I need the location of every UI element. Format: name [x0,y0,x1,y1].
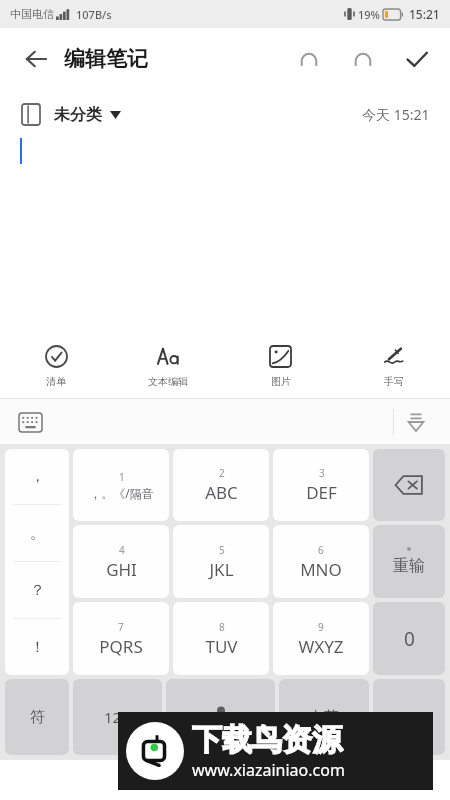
staticText: 符 [30,708,45,727]
button[interactable]: 重做 [340,36,386,82]
button[interactable]: 中英 [279,679,369,755]
button[interactable]: 5 [173,525,269,598]
staticText: 9 [318,620,324,634]
button[interactable]: 键盘设置 [12,404,48,440]
staticText: 7 [118,620,124,634]
staticText: 手写 [384,375,404,388]
button[interactable]: 4 [73,525,169,598]
staticText: 。 [30,524,45,543]
button[interactable] [373,679,445,755]
staticText: 12# [104,707,131,727]
button[interactable]: 收起候选 [394,400,438,444]
staticText: ？ [30,581,45,600]
button[interactable]: 6 [273,525,369,598]
button[interactable]: 符 [5,679,69,755]
staticText: MNO [300,558,342,581]
button[interactable]: 9 [273,602,369,675]
button[interactable]: 2 [173,449,269,521]
button[interactable]: 撤销 [286,36,332,82]
staticText: 中国电信 [10,7,54,21]
staticText: 1 [119,470,125,484]
staticText: GHI [106,558,137,581]
button[interactable]: 返回 [14,37,58,81]
staticText: PQRS [99,635,143,658]
staticText: www.xiazainiao.com [192,759,345,781]
staticText: DEF [306,481,337,504]
button[interactable]: 文本编辑 [112,334,224,398]
staticText: ， [30,467,45,486]
button[interactable]: 图片 [224,334,337,398]
staticText: 8 [219,620,225,634]
staticText: 15:21 [409,6,440,22]
staticText: 19% [358,7,380,22]
button[interactable]: 0 [373,602,445,675]
button[interactable]: 删除 [373,449,445,521]
button[interactable]: 收起键盘 [202,765,248,795]
button[interactable]: 1 [73,449,169,521]
button[interactable]: 12# [73,679,162,755]
button[interactable]: ， [5,449,69,675]
staticText: 107B/s [76,7,112,22]
staticText: 3 [319,466,325,480]
staticText: WXYZ [298,635,344,658]
staticText: 文本编辑 [148,375,188,388]
staticText: 编辑笔记 [64,46,148,72]
staticText: 0 [404,626,415,652]
staticText: 图片 [271,375,291,388]
button[interactable]: 7 [73,602,169,675]
staticText: ，。《/隔音 [89,485,154,501]
staticText: 4 [119,543,125,557]
button[interactable]: 重输 [373,525,445,598]
staticText: 重输 [393,556,425,576]
staticText: ！ [30,638,45,657]
staticText: 未分类 [54,105,102,125]
staticText: 5 [219,543,225,557]
staticText: 2 [219,466,225,480]
button[interactable]: 3 [273,449,369,521]
staticText: 下载鸟资源 [192,721,342,759]
button[interactable]: 语音输入 [166,679,275,755]
button[interactable]: 未分类 [22,104,121,125]
button[interactable]: 完成 [394,36,440,82]
staticText: ABC [205,481,238,504]
button[interactable]: 8 [173,602,269,675]
staticText: JKL [209,558,234,581]
staticText: 中英 [309,708,339,727]
button[interactable]: 清单 [0,334,112,398]
staticText: TUV [205,635,238,658]
button[interactable]: 手写 [337,334,450,398]
staticText: 6 [318,543,324,557]
staticText: 清单 [46,375,66,388]
staticText: 今天 15:21 [362,105,430,124]
